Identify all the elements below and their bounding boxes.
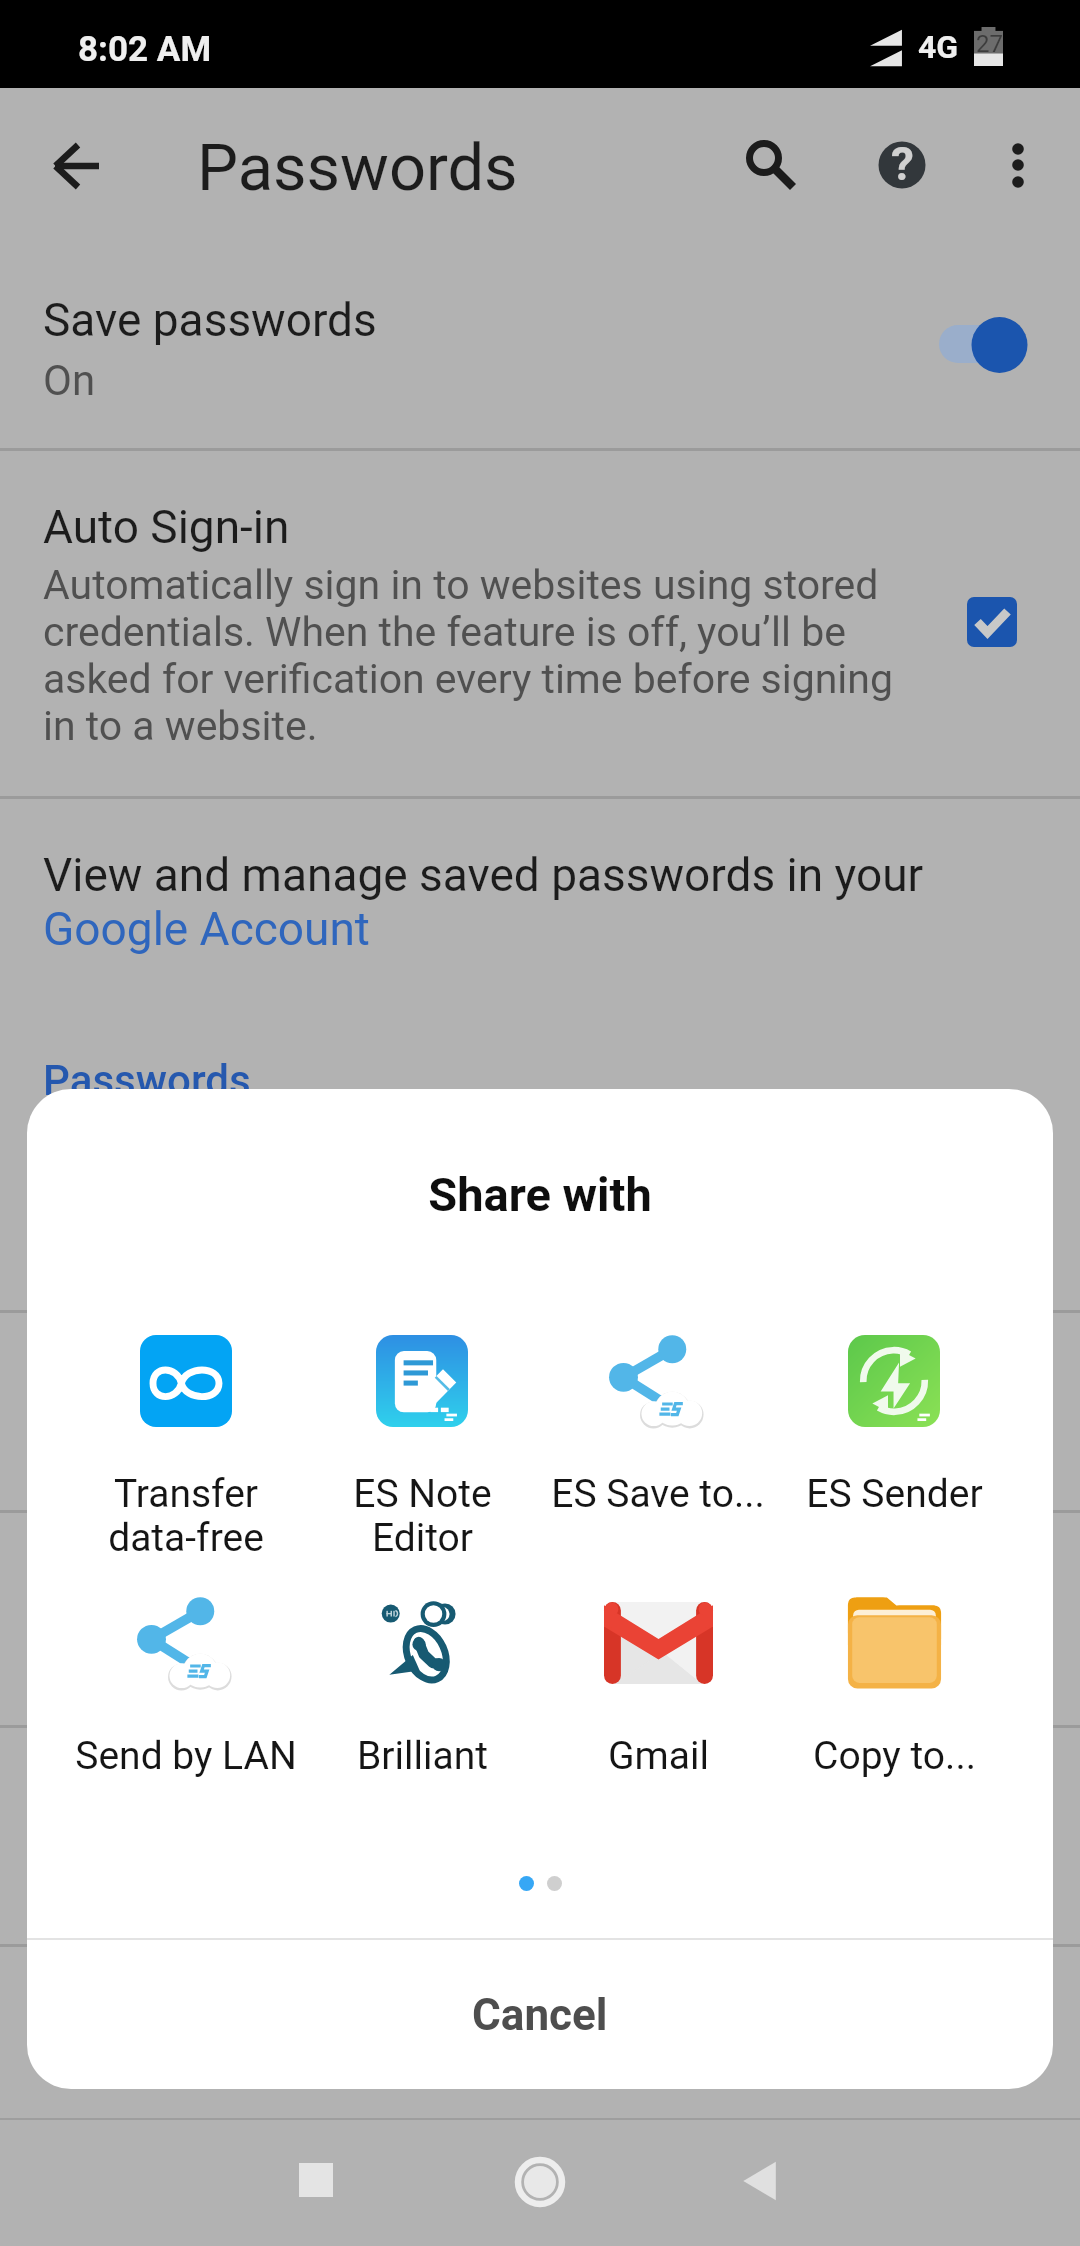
staticText: Send by LAN bbox=[75, 1733, 297, 1779]
button[interactable]: More options bbox=[968, 115, 1068, 215]
staticText: Copy to... bbox=[813, 1733, 976, 1779]
staticText: Share with bbox=[27, 1167, 1053, 1222]
staticText: ? bbox=[891, 137, 914, 191]
staticText: View and manage saved passwords in your bbox=[43, 848, 924, 902]
staticText: Brilliant bbox=[357, 1733, 488, 1779]
staticText: Gmail bbox=[608, 1733, 709, 1779]
button[interactable]: Back bbox=[27, 116, 127, 216]
staticText: On bbox=[43, 356, 96, 405]
staticText: ES Save to... bbox=[551, 1471, 765, 1517]
button[interactable]: Transfer data-free bbox=[68, 1335, 304, 1560]
staticText: 4G bbox=[918, 28, 959, 66]
button[interactable]: ES Note Editor bbox=[304, 1335, 540, 1560]
staticText: Cancel bbox=[472, 1989, 608, 2041]
button[interactable]: Send by LAN bbox=[68, 1597, 304, 1779]
staticText: Passwords bbox=[197, 130, 518, 206]
button[interactable]: ES Save to... bbox=[540, 1335, 776, 1517]
staticText: 8:02 AM bbox=[78, 29, 212, 70]
button[interactable]: Brilliant bbox=[304, 1597, 540, 1779]
button[interactable]: ES Sender bbox=[776, 1335, 1012, 1517]
button[interactable]: Help bbox=[852, 115, 952, 215]
staticText: Transfer data-free bbox=[108, 1471, 264, 1560]
button[interactable]: Recent apps bbox=[266, 2130, 366, 2230]
button[interactable]: Search bbox=[714, 115, 814, 215]
staticText: ES Note Editor bbox=[353, 1471, 492, 1560]
staticText: ES Sender bbox=[806, 1471, 983, 1517]
button[interactable]: Home bbox=[490, 2132, 590, 2232]
staticText: Automatically sign in to websites using … bbox=[43, 561, 928, 750]
staticText: Auto Sign-in bbox=[43, 500, 290, 554]
button[interactable]: Passwords bbox=[43, 1056, 251, 1105]
button[interactable]: Auto Sign-in bbox=[967, 597, 1017, 647]
staticText: 27 bbox=[976, 30, 1003, 58]
button[interactable]: Back bbox=[710, 2131, 810, 2231]
staticText: Save passwords bbox=[43, 293, 377, 347]
button[interactable]: Copy to... bbox=[776, 1597, 1012, 1779]
button[interactable]: Cancel bbox=[27, 1940, 1053, 2089]
button[interactable]: Gmail bbox=[540, 1597, 776, 1779]
button[interactable]: Save passwords bbox=[925, 305, 1037, 383]
button[interactable]: Google Account bbox=[43, 902, 370, 956]
